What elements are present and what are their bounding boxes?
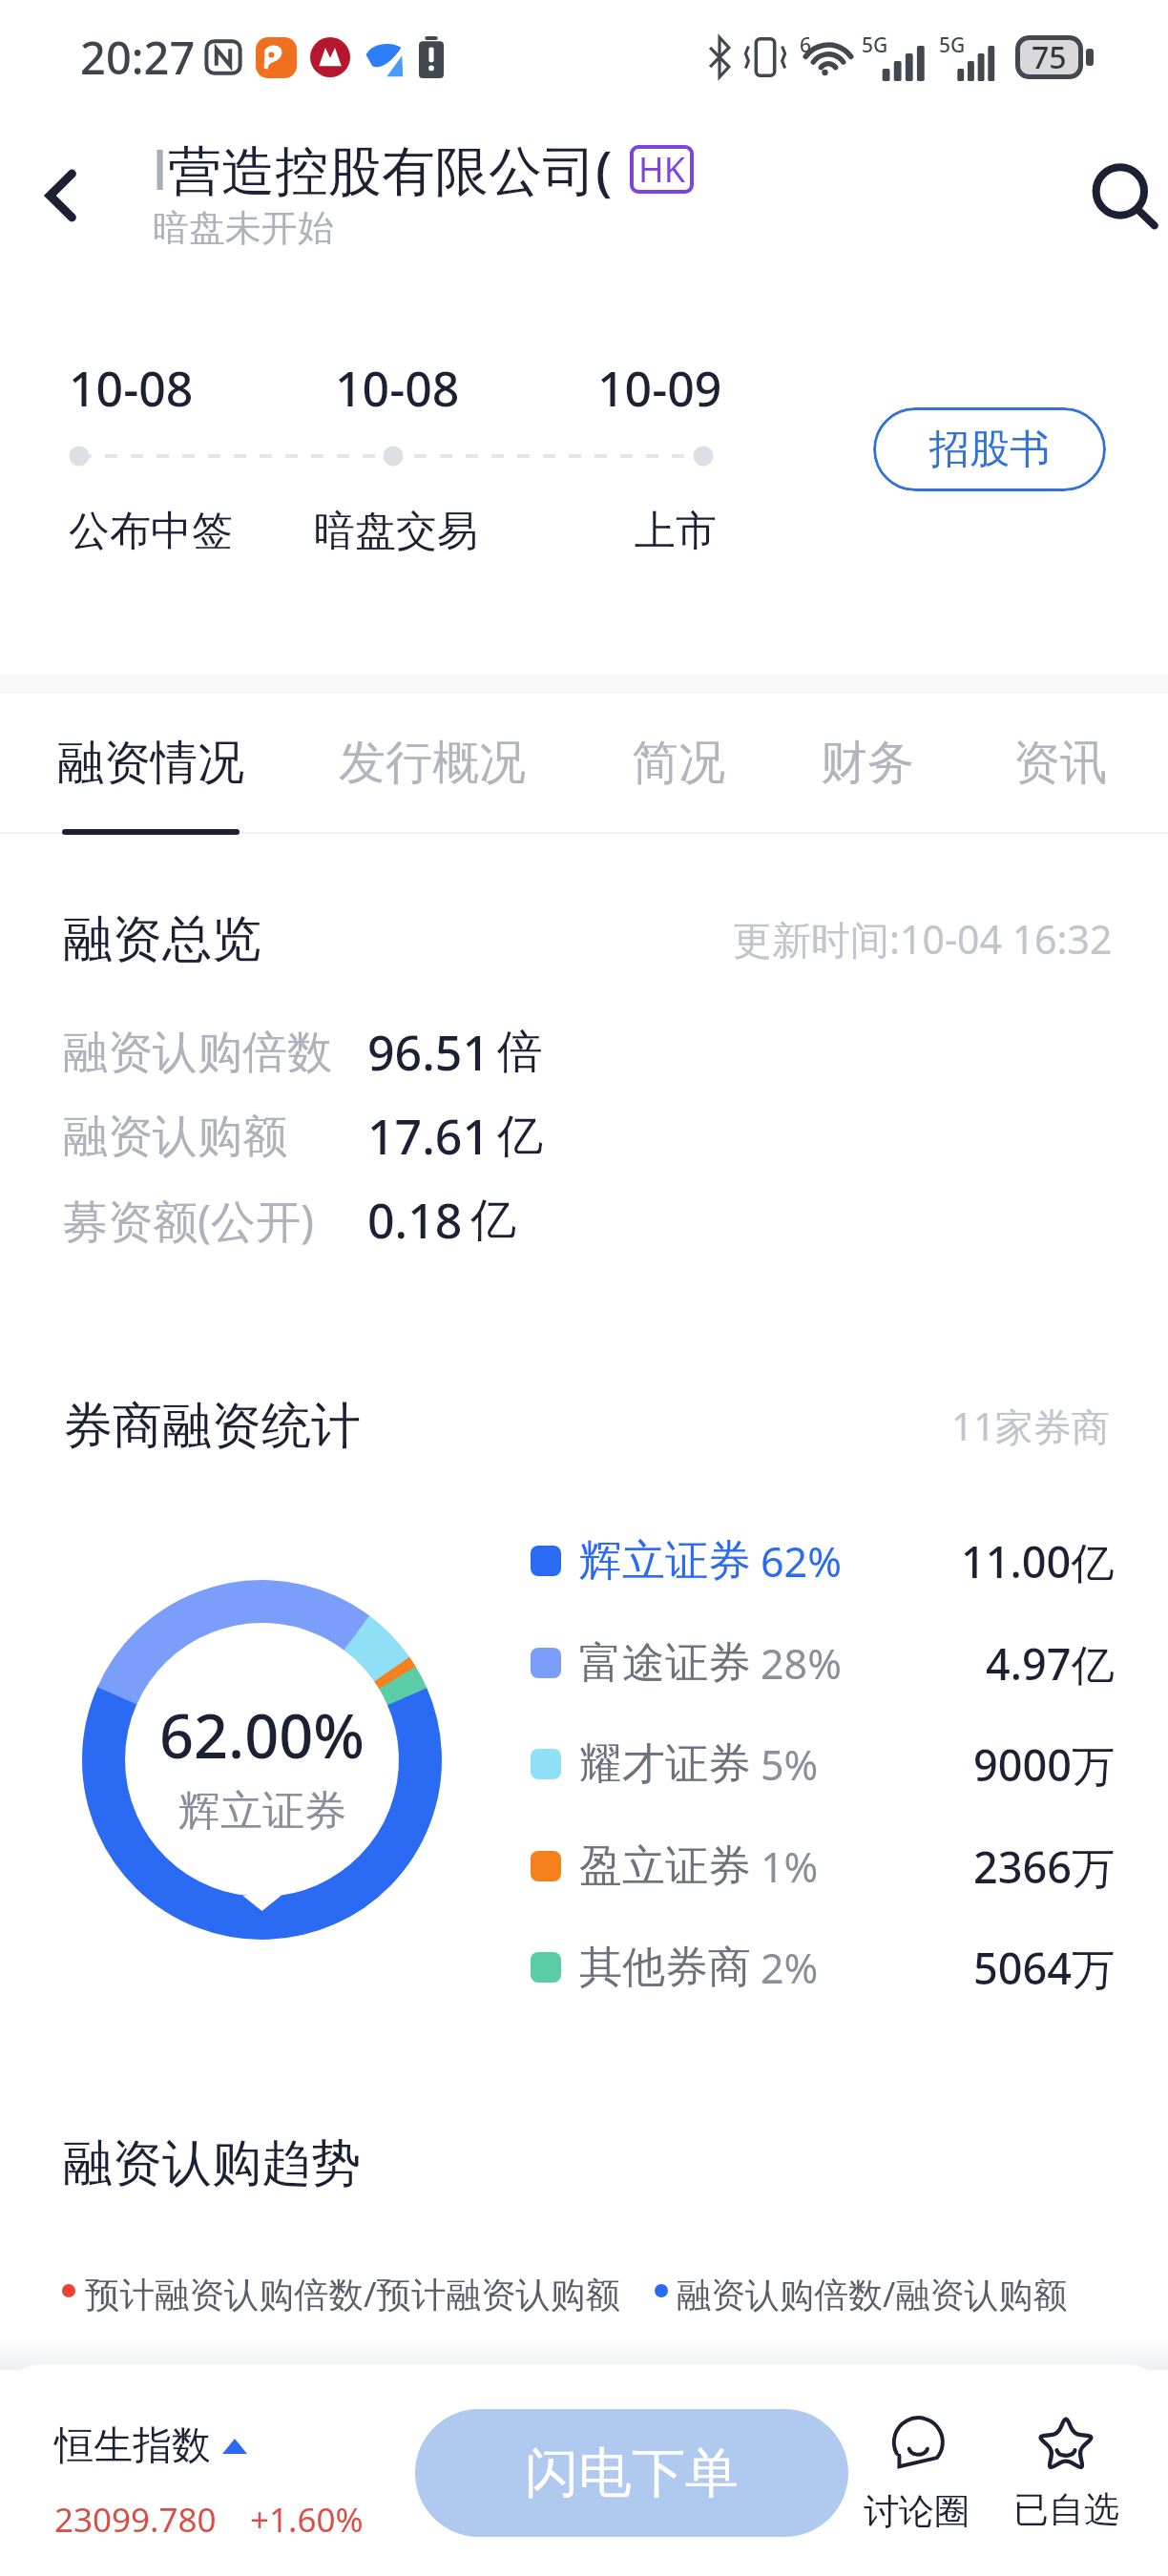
staticText: 简况 bbox=[632, 734, 725, 793]
staticText: 5G bbox=[862, 31, 888, 59]
staticText: 营造控股有限公司( bbox=[168, 133, 613, 205]
staticText: 1% bbox=[761, 1839, 819, 1895]
staticText: 20:27 bbox=[80, 27, 196, 88]
staticText: 10-08 bbox=[335, 356, 460, 421]
staticText: 9000万 bbox=[973, 1735, 1115, 1794]
staticText: 已自选 bbox=[1013, 2487, 1119, 2532]
staticText: 23099.780 bbox=[54, 2497, 217, 2543]
staticText: 62% bbox=[761, 1533, 842, 1589]
button[interactable]: 耀才证券 bbox=[531, 1714, 1115, 1815]
staticText: 亿 bbox=[470, 1192, 516, 1249]
staticText: 预计融资认购倍数/预计融资认购额 bbox=[85, 2270, 621, 2317]
button[interactable]: 恒生指数 bbox=[54, 2421, 364, 2543]
button[interactable]: 其他券商 bbox=[531, 1917, 1115, 2018]
staticText: 亿 bbox=[497, 1108, 543, 1165]
staticText: 75 bbox=[1032, 36, 1067, 78]
staticText: 5G bbox=[939, 31, 966, 59]
staticText: 富途证券 bbox=[579, 1636, 751, 1691]
staticText: HK bbox=[638, 146, 685, 193]
button[interactable]: 财务 bbox=[753, 694, 982, 841]
staticText: 融资认购趋势 bbox=[63, 2132, 361, 2195]
staticText: 闪电下单 bbox=[525, 2440, 739, 2507]
staticText: 62.00% bbox=[159, 1694, 365, 1776]
staticText: 融资认购倍数/融资认购额 bbox=[677, 2271, 1068, 2317]
staticText: 4.97亿 bbox=[986, 1634, 1115, 1693]
staticText: 公布中签 bbox=[69, 506, 233, 557]
staticText: 暗盘交易 bbox=[314, 506, 478, 557]
staticText: 招股书 bbox=[929, 425, 1050, 475]
staticText: +1.60% bbox=[250, 2497, 364, 2543]
staticText: 17.61 bbox=[367, 1104, 490, 1169]
staticText: 更新时间:10-04 16:32 bbox=[733, 912, 1113, 966]
staticText: 辉立证券 bbox=[579, 1534, 751, 1589]
staticText: 融资总览 bbox=[63, 908, 261, 971]
staticText: 讨论圈 bbox=[864, 2489, 970, 2534]
staticText: 其他券商 bbox=[579, 1941, 751, 1995]
button[interactable]: 融资情况 bbox=[36, 694, 265, 841]
staticText: 融资认购倍数 bbox=[63, 1025, 332, 1081]
staticText: 96.51 bbox=[367, 1020, 490, 1085]
staticText: 2% bbox=[761, 1940, 819, 1996]
staticText: 5064万 bbox=[973, 1939, 1115, 1997]
staticText: 倍 bbox=[497, 1024, 543, 1081]
button[interactable]: 招股书 bbox=[873, 407, 1106, 491]
staticText: 暗盘未开始 bbox=[153, 205, 334, 251]
button[interactable]: 盈立证券 bbox=[531, 1816, 1115, 1917]
staticText: 辉立证券 bbox=[178, 1785, 346, 1838]
staticText: l bbox=[153, 133, 168, 205]
staticText: 上市 bbox=[635, 506, 717, 557]
staticText: 10-08 bbox=[69, 356, 194, 421]
button[interactable]: 资讯 bbox=[946, 694, 1168, 841]
staticText: 发行概况 bbox=[339, 734, 526, 793]
staticText: 财务 bbox=[821, 734, 914, 793]
staticText: 0.18 bbox=[367, 1188, 463, 1253]
button[interactable]: 富途证券 bbox=[531, 1612, 1115, 1714]
staticText: 11.00亿 bbox=[961, 1532, 1115, 1590]
staticText: 募资额(公开) bbox=[63, 1190, 315, 1251]
button[interactable]: 辉立证券 bbox=[531, 1510, 1115, 1611]
button[interactable]: 闪电下单 bbox=[415, 2409, 848, 2537]
staticText: 10-09 bbox=[597, 356, 722, 421]
button[interactable]: 简况 bbox=[564, 694, 793, 841]
staticText: 11家券商 bbox=[951, 1400, 1110, 1452]
staticText: 盈立证券 bbox=[579, 1839, 751, 1894]
staticText: 2366万 bbox=[973, 1838, 1115, 1896]
staticText: 耀才证券 bbox=[579, 1737, 751, 1792]
staticText: 5% bbox=[761, 1736, 819, 1793]
staticText: 券商融资统计 bbox=[63, 1395, 361, 1458]
staticText: 6 bbox=[800, 31, 812, 59]
staticText: 资讯 bbox=[1013, 734, 1107, 793]
button[interactable]: 讨论圈 bbox=[845, 2417, 988, 2534]
staticText: 融资情况 bbox=[57, 734, 244, 793]
staticText: 融资认购额 bbox=[63, 1109, 287, 1165]
staticText: 恒生指数 bbox=[54, 2421, 211, 2471]
button[interactable]: 发行概况 bbox=[318, 694, 547, 841]
button[interactable]: Search bbox=[1069, 139, 1168, 252]
button[interactable]: 已自选 bbox=[994, 2415, 1137, 2532]
button[interactable]: Back bbox=[8, 143, 113, 248]
staticText: 28% bbox=[761, 1635, 842, 1692]
